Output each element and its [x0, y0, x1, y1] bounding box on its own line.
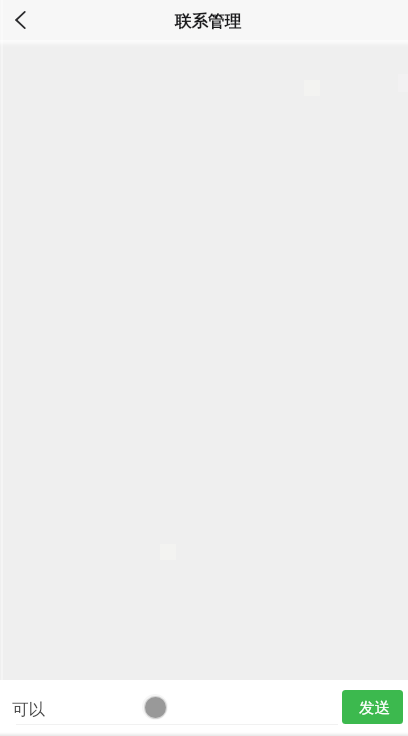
button[interactable]: 发送: [342, 690, 403, 724]
button[interactable]: Back: [0, 0, 40, 40]
staticText: 联系管理: [175, 11, 241, 32]
staticText: 可以: [12, 699, 45, 720]
staticText: 发送: [359, 698, 390, 718]
